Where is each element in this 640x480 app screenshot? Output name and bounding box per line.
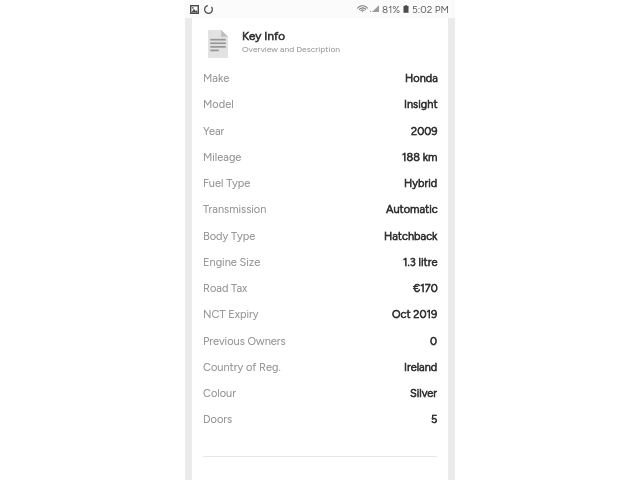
staticText: 188 km (402, 151, 438, 164)
staticText: 0 (430, 335, 438, 348)
staticText: NCT Expiry (203, 308, 259, 321)
staticText: Ireland (404, 361, 438, 374)
button[interactable]: Country of Reg. (192, 354, 448, 380)
staticText: Hybrid (404, 177, 438, 190)
staticText: Oct 2019 (392, 308, 438, 321)
staticText: Colour (203, 387, 236, 400)
staticText: Automatic (386, 203, 438, 216)
staticText: Key Info (242, 29, 286, 43)
staticText: Automatic (386, 203, 438, 216)
staticText: Road Tax (203, 282, 248, 295)
button[interactable]: NCT Expiry (192, 301, 448, 327)
staticText: Oct 2019 (392, 308, 438, 321)
staticText: 5:02 PM (412, 3, 449, 15)
staticText: Overview and Description (242, 44, 341, 54)
staticText: Country of Reg. (203, 361, 281, 374)
button[interactable]: Previous Owners (192, 328, 448, 354)
other: Sync (204, 5, 213, 14)
staticText: Year (203, 125, 225, 138)
button[interactable]: Mileage (192, 144, 448, 170)
staticText: Hatchback (384, 230, 438, 243)
staticText: 2009 (411, 125, 438, 138)
button[interactable]: Colour (192, 380, 448, 406)
staticText: €170 (413, 282, 438, 295)
staticText: 2009 (411, 125, 438, 138)
staticText: 0 (430, 335, 438, 348)
staticText: Silver (410, 387, 438, 400)
staticText: Honda (405, 72, 438, 85)
staticText: Make (203, 72, 230, 85)
staticText: Doors (203, 413, 233, 426)
button[interactable]: Doors (192, 406, 448, 432)
staticText: 5 (431, 413, 438, 426)
staticText: 1.3 litre (403, 256, 438, 269)
button[interactable]: Fuel Type (192, 170, 448, 196)
staticText: Hatchback (384, 230, 438, 243)
button[interactable]: Engine Size (192, 249, 448, 275)
button[interactable]: Body Type (192, 223, 448, 249)
staticText: Hybrid (404, 177, 438, 190)
staticText: 5 (431, 413, 438, 426)
staticText: Mileage (203, 151, 242, 164)
staticText: 1.3 litre (403, 256, 438, 269)
staticText: Engine Size (203, 256, 261, 269)
staticText: 188 km (402, 151, 438, 164)
staticText: Fuel Type (203, 177, 251, 190)
staticText: Key Info (242, 29, 286, 43)
staticText: Insight (404, 98, 438, 111)
staticText: Insight (404, 98, 438, 111)
button[interactable]: Make (192, 65, 448, 91)
button[interactable]: Year (192, 118, 448, 144)
staticText: Previous Owners (203, 335, 286, 348)
button[interactable]: Road Tax (192, 275, 448, 301)
staticText: 81% (382, 3, 401, 15)
staticText: Silver (410, 387, 438, 400)
staticText: €170 (413, 282, 438, 295)
staticText: Transmission (203, 203, 267, 216)
staticText: Model (203, 98, 234, 111)
other: Screenshot (190, 5, 199, 14)
staticText: Ireland (404, 361, 438, 374)
button[interactable]: Transmission (192, 196, 448, 222)
button[interactable]: Model (192, 91, 448, 117)
staticText: Body Type (203, 230, 256, 243)
staticText: Honda (405, 72, 438, 85)
